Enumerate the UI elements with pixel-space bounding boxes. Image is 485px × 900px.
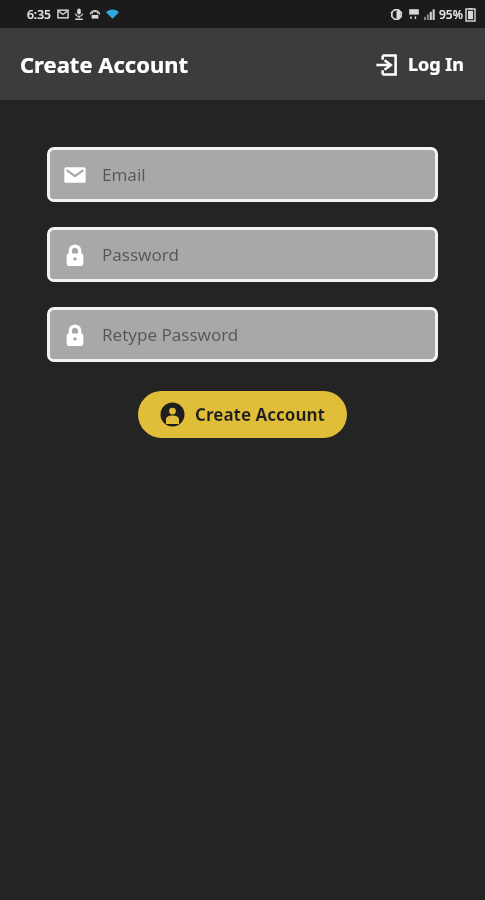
button[interactable]: Log In bbox=[368, 46, 471, 83]
button[interactable]: Create Account bbox=[138, 391, 347, 438]
staticText: Password bbox=[102, 243, 179, 266]
staticText: Create Account bbox=[195, 403, 325, 426]
button[interactable]: Retype Password bbox=[47, 307, 438, 362]
staticText: Email bbox=[102, 163, 146, 186]
staticText: Retype Password bbox=[102, 323, 239, 346]
staticText: 95% bbox=[439, 6, 463, 22]
other: Log In bbox=[374, 53, 398, 77]
button[interactable]: Password bbox=[47, 227, 438, 282]
staticText: Log In bbox=[408, 52, 465, 77]
button[interactable]: Email bbox=[47, 147, 438, 202]
staticText: Create Account bbox=[20, 49, 189, 79]
staticText: 6:35 bbox=[27, 6, 51, 22]
